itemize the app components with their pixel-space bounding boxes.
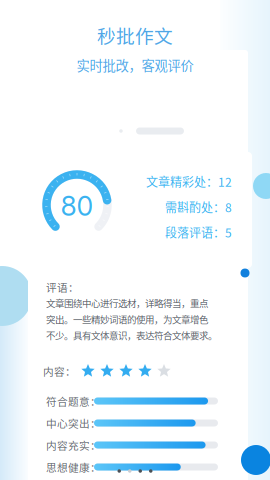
staticText: 段落评语：5 <box>165 224 232 241</box>
staticText: 内容充实： <box>46 437 101 453</box>
staticText: 符合题意： <box>46 393 101 409</box>
staticText: 需斟酌处：8 <box>165 198 232 216</box>
staticText: 思想健康： <box>46 459 101 475</box>
staticText: 中心突出： <box>46 415 101 431</box>
staticText: 内容： <box>43 363 76 379</box>
staticText: 实时批改，客观评价 <box>76 55 193 75</box>
staticText: 突出。一些精妙词语的使用，为文章增色 <box>46 312 208 326</box>
staticText: 评语： <box>46 279 79 295</box>
staticText: 80 <box>60 190 93 222</box>
staticText: 文章围绕中心进行选材，详略得当，重点 <box>46 296 208 310</box>
staticText: 文章精彩处：12 <box>146 173 232 190</box>
staticText: 不少。具有文体意识，表达符合文体要求。 <box>46 328 217 342</box>
staticText: 秒批作文 <box>97 21 173 48</box>
